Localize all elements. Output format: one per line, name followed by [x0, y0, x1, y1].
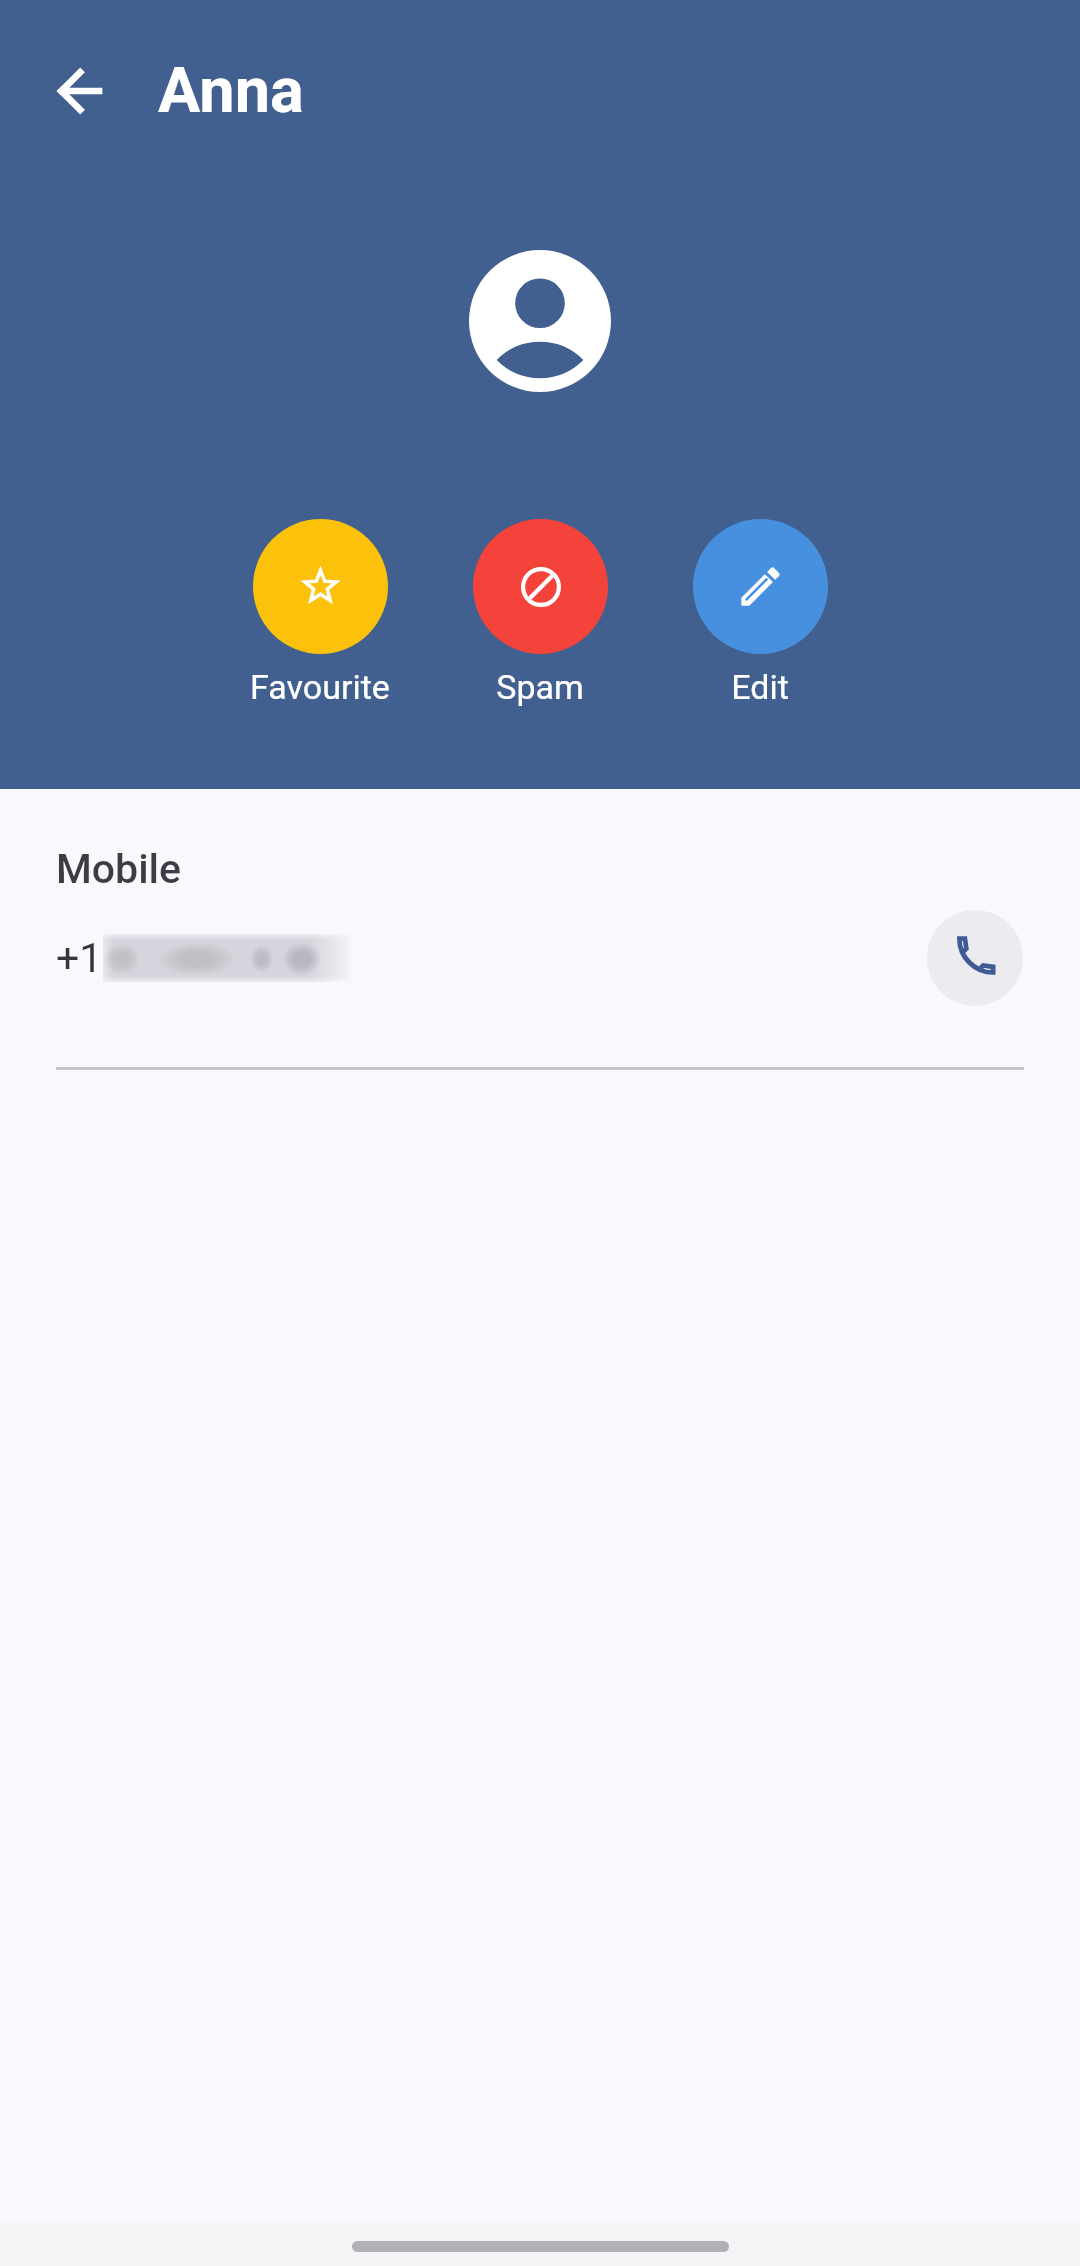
staticText: Mobile — [56, 845, 182, 893]
button[interactable]: Spam — [430, 519, 650, 707]
staticText: Anna — [158, 54, 304, 128]
button[interactable]: +1 — [0, 898, 1080, 1018]
button[interactable]: Edit — [650, 519, 870, 707]
button[interactable]: Call — [927, 910, 1023, 1006]
staticText: Spam — [496, 667, 584, 707]
button[interactable]: Back — [36, 46, 126, 136]
button[interactable]: Favourite — [210, 519, 430, 707]
staticText: Favourite — [250, 667, 390, 707]
staticText: Edit — [731, 667, 789, 707]
staticText: +1 — [56, 934, 103, 982]
